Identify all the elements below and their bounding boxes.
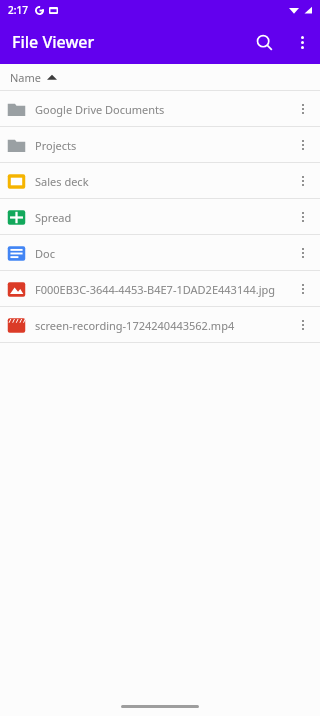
button[interactable]: Projects [0, 127, 320, 163]
staticText: File Viewer [12, 31, 95, 53]
staticText: Spread [35, 210, 286, 225]
button[interactable]: Sales deck [0, 163, 320, 199]
button[interactable]: More options for Doc [286, 236, 320, 270]
staticText: 2:17 [8, 3, 28, 17]
button[interactable]: More options for Projects [286, 128, 320, 162]
staticText: Doc [35, 246, 286, 261]
staticText: F000EB3C-3644-4453-B4E7-1DAD2E443144.jpg [35, 282, 286, 297]
button[interactable]: More options [284, 24, 320, 60]
staticText: Name [10, 70, 42, 85]
button[interactable]: F000EB3C-3644-4453-B4E7-1DAD2E443144.jpg [0, 271, 320, 307]
button[interactable]: Search [244, 22, 284, 62]
button[interactable]: Name [10, 70, 57, 85]
button[interactable]: More options for F000EB3C-3644-4453-B4E7… [286, 272, 320, 306]
button[interactable]: More options for screen-recording-172424… [286, 308, 320, 342]
button[interactable]: Google Drive Documents [0, 91, 320, 127]
button[interactable]: More options for Spread [286, 200, 320, 234]
button[interactable]: screen-recording-1724240443562.mp4 [0, 307, 320, 343]
staticText: screen-recording-1724240443562.mp4 [35, 318, 286, 333]
button[interactable]: Doc [0, 235, 320, 271]
button[interactable]: Spread [0, 199, 320, 235]
staticText: Google Drive Documents [35, 102, 286, 117]
button[interactable]: More options for Google Drive Documents [286, 92, 320, 126]
staticText: Sales deck [35, 174, 286, 189]
staticText: Projects [35, 138, 286, 153]
button[interactable]: More options for Sales deck [286, 164, 320, 198]
